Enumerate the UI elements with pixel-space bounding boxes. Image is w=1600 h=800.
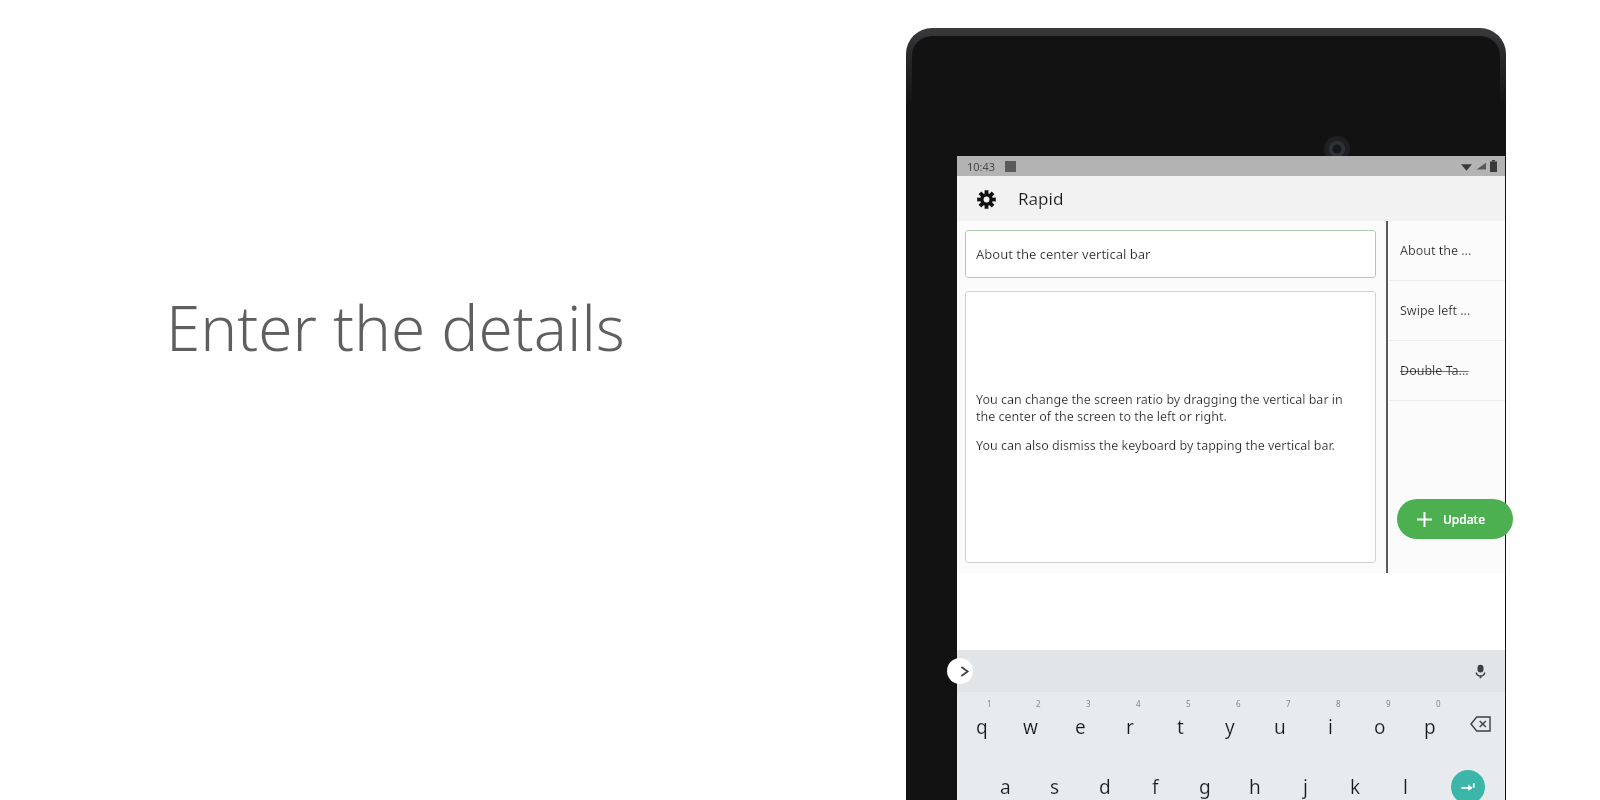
staticText: 9 [1386, 698, 1391, 709]
button[interactable]: k [1330, 755, 1380, 800]
button[interactable]: Expand suggestions [947, 658, 973, 684]
staticText: i [1328, 714, 1333, 740]
staticText: 8 [1336, 698, 1341, 709]
staticText: 7 [1286, 698, 1291, 709]
button[interactable]: 0 [1405, 692, 1455, 755]
staticText: u [1274, 714, 1286, 740]
staticText: d [1099, 774, 1111, 800]
button[interactable]: j [1280, 755, 1330, 800]
button[interactable]: 5 [1155, 692, 1205, 755]
staticText: a [1000, 774, 1011, 800]
button[interactable]: 6 [1205, 692, 1255, 755]
button[interactable]: Double Ta... [1389, 341, 1505, 400]
button[interactable]: About the ... [1389, 221, 1505, 280]
staticText: p [1424, 714, 1436, 740]
staticText: j [1303, 774, 1308, 800]
staticText: f [1152, 774, 1159, 800]
staticText: 4 [1136, 698, 1141, 709]
button[interactable]: Enter [1430, 755, 1505, 800]
button[interactable]: 1 [957, 692, 1006, 755]
staticText: o [1374, 714, 1386, 740]
staticText: Update [1443, 511, 1486, 527]
staticText: k [1350, 774, 1361, 800]
button[interactable]: d [1080, 755, 1130, 800]
button[interactable]: f [1130, 755, 1180, 800]
staticText: 5 [1186, 698, 1191, 709]
staticText: r [1126, 714, 1134, 740]
staticText: Enter the details [166, 285, 625, 369]
staticText: 1 [987, 698, 992, 709]
staticText: 3 [1086, 698, 1091, 709]
staticText: y [1225, 714, 1235, 740]
button[interactable]: Swipe left ... [1389, 281, 1505, 340]
button[interactable]: g [1180, 755, 1230, 800]
button[interactable]: h [1230, 755, 1280, 800]
button[interactable]: Resize panes [1384, 221, 1389, 573]
button[interactable]: Voice input [1467, 658, 1493, 684]
staticText: s [1050, 774, 1060, 800]
staticText: w [1023, 714, 1038, 740]
button[interactable]: 2 [1006, 692, 1055, 755]
staticText: You can also dismiss the keyboard by tap… [976, 437, 1335, 454]
staticText: 6 [1236, 698, 1241, 709]
staticText: t [1177, 714, 1184, 740]
button[interactable]: 4 [1105, 692, 1155, 755]
staticText: l [1403, 774, 1408, 800]
button[interactable]: s [1030, 755, 1080, 800]
staticText: Double Ta... [1400, 362, 1469, 379]
staticText: Swipe left ... [1400, 302, 1471, 319]
button[interactable]: l [1380, 755, 1430, 800]
staticText: q [976, 714, 988, 740]
button[interactable]: 8 [1305, 692, 1355, 755]
button[interactable]: Settings [969, 182, 1003, 216]
button[interactable]: 3 [1055, 692, 1105, 755]
staticText: 2 [1036, 698, 1041, 709]
staticText: About the ... [1400, 242, 1472, 259]
button[interactable]: You can change the screen ratio by dragg… [965, 291, 1376, 563]
staticText: e [1075, 714, 1086, 740]
button[interactable]: Backspace [1455, 692, 1505, 755]
button[interactable]: 7 [1255, 692, 1305, 755]
staticText: 10:43 [967, 159, 996, 174]
staticText: You can change the screen ratio by dragg… [976, 391, 1365, 425]
staticText: h [1249, 774, 1261, 800]
button[interactable]: About the center vertical bar [965, 230, 1376, 278]
staticText: About the center vertical bar [976, 245, 1151, 263]
staticText: 0 [1436, 698, 1441, 709]
button[interactable]: a [981, 755, 1030, 800]
staticText: g [1199, 774, 1211, 800]
button[interactable]: Update [1397, 499, 1513, 539]
button[interactable]: 9 [1355, 692, 1405, 755]
staticText: Rapid [1018, 187, 1064, 210]
